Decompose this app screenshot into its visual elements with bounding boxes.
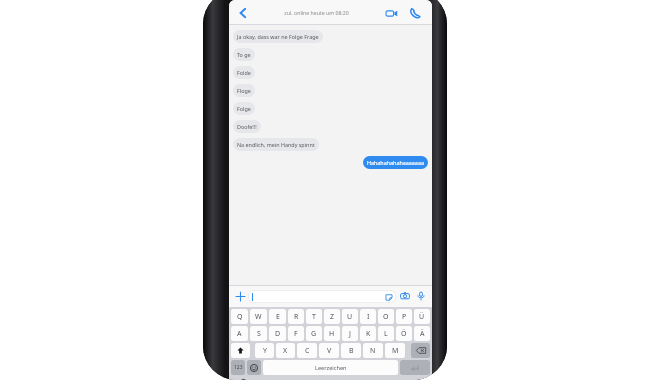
staticText: Doofe!!!	[237, 123, 257, 130]
button[interactable]: Hahahahahahaaaaaaa	[363, 156, 428, 169]
button[interactable]: Dictation	[411, 376, 425, 380]
button[interactable]: Return	[400, 360, 430, 375]
staticText: Ä	[420, 329, 425, 339]
button[interactable]: O	[378, 309, 394, 324]
button[interactable]: Floge	[233, 84, 255, 97]
staticText: zul. online heute um 08:20	[284, 9, 349, 16]
button[interactable]: A	[231, 326, 248, 341]
button[interactable]: C	[297, 343, 317, 358]
button[interactable]: Stickers	[383, 291, 394, 302]
staticText: B	[349, 346, 354, 356]
button[interactable]: Ö	[396, 326, 412, 341]
button[interactable]: E	[269, 309, 286, 324]
button[interactable]: R	[288, 309, 304, 324]
staticText: Z	[330, 312, 335, 322]
staticText: J	[349, 329, 351, 339]
button[interactable]: Doofe!!!	[233, 120, 261, 133]
staticText: Ü	[419, 312, 425, 322]
staticText: N	[370, 346, 376, 356]
staticText: E	[276, 312, 280, 322]
button[interactable]: H	[324, 326, 340, 341]
button[interactable]: Folge	[233, 102, 255, 115]
staticText: 123	[234, 364, 243, 371]
staticText: A	[237, 329, 242, 339]
button[interactable]: Ä	[414, 326, 430, 341]
button[interactable]: T	[306, 309, 322, 324]
button[interactable]: Leerzeichen	[263, 360, 398, 375]
button[interactable]: K	[360, 326, 376, 341]
button[interactable]: G	[306, 326, 322, 341]
button[interactable]: S	[250, 326, 267, 341]
button[interactable]: Na endlich, mein Handy spinnt	[233, 138, 319, 151]
staticText: To ge	[237, 51, 251, 58]
button[interactable]: Folde	[233, 66, 255, 79]
staticText: Floge	[237, 87, 251, 94]
staticText: Hahahahahahaaaaaaa	[367, 159, 424, 166]
button[interactable]: Emoji	[247, 360, 261, 375]
button[interactable]: M	[385, 343, 405, 358]
button[interactable]: To ge	[233, 48, 255, 61]
staticText: Leerzeichen	[315, 364, 347, 372]
staticText: Q	[237, 312, 243, 322]
button[interactable]: I	[360, 309, 376, 324]
button[interactable]: F	[288, 326, 304, 341]
button[interactable]: Q	[231, 309, 248, 324]
button[interactable]: L	[378, 326, 394, 341]
staticText: F	[294, 329, 298, 339]
staticText: Folde	[237, 69, 251, 76]
button[interactable]: P	[396, 309, 412, 324]
button[interactable]: D	[269, 326, 286, 341]
button[interactable]: Ü	[414, 309, 430, 324]
staticText: Ja okay, dass war ne Folge Frage	[237, 33, 319, 40]
button[interactable]: U	[342, 309, 358, 324]
staticText: K	[366, 329, 371, 339]
button[interactable]: Z	[324, 309, 340, 324]
staticText: M	[392, 346, 399, 356]
staticText: I	[367, 312, 370, 322]
staticText: L	[384, 329, 388, 339]
button[interactable]: X	[276, 343, 295, 358]
button[interactable]: Change keyboard language	[236, 376, 250, 380]
button[interactable]: Voice call	[404, 2, 426, 24]
button[interactable]: J	[342, 326, 358, 341]
staticText: D	[275, 329, 281, 339]
button[interactable]: Stickers	[248, 290, 396, 303]
staticText: R	[294, 312, 299, 322]
staticText: Folge	[237, 105, 251, 112]
staticText: Ö	[401, 329, 407, 339]
staticText: U	[347, 312, 353, 322]
staticText: W	[255, 312, 262, 322]
staticText: X	[283, 346, 288, 356]
button[interactable]: Ja okay, dass war ne Folge Frage	[233, 30, 323, 43]
button[interactable]: Video call	[380, 2, 402, 24]
button[interactable]: Back	[233, 3, 253, 23]
button[interactable]: Shift	[231, 343, 250, 358]
button[interactable]: Voice message	[413, 288, 429, 304]
staticText: T	[312, 312, 316, 322]
staticText: Na endlich, mein Handy spinnt	[237, 141, 315, 148]
button[interactable]: V	[319, 343, 339, 358]
button[interactable]: Add attachment	[232, 288, 248, 304]
button[interactable]: Y	[255, 343, 274, 358]
staticText: O	[383, 312, 389, 322]
staticText: S	[257, 329, 261, 339]
staticText: H	[329, 329, 335, 339]
button[interactable]: W	[250, 309, 267, 324]
button[interactable]: B	[341, 343, 361, 358]
staticText: C	[305, 346, 310, 356]
staticText: V	[327, 346, 332, 356]
staticText: Y	[263, 346, 267, 356]
button[interactable]: N	[363, 343, 383, 358]
button[interactable]: 123	[231, 360, 245, 375]
button[interactable]: Camera	[397, 288, 413, 304]
staticText: G	[311, 329, 317, 339]
button[interactable]: Backspace	[411, 343, 430, 358]
staticText: P	[402, 312, 407, 322]
